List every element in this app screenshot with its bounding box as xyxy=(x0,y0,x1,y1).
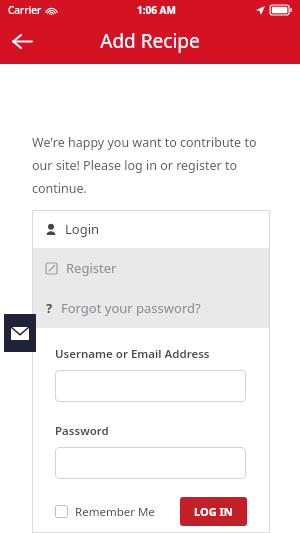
staticText: Register xyxy=(66,259,117,277)
button[interactable]: Remember Me xyxy=(55,505,68,518)
staticText: Forgot your password? xyxy=(61,299,201,317)
staticText: Login xyxy=(65,220,100,238)
staticText: Add Recipe xyxy=(100,28,200,54)
button[interactable]: ? xyxy=(32,288,270,328)
button[interactable]: Messages xyxy=(4,314,36,352)
staticText: LOG IN xyxy=(194,504,233,519)
button[interactable]: Text input xyxy=(55,447,246,479)
button[interactable]: Login xyxy=(32,210,270,248)
button[interactable]: Text input xyxy=(55,370,246,402)
button[interactable]: Register xyxy=(32,248,270,288)
staticText: 1:06 AM xyxy=(137,3,176,17)
staticText: Password xyxy=(55,423,109,439)
staticText: ? xyxy=(46,299,53,317)
staticText: We're happy you want to contribute to ou… xyxy=(32,134,272,197)
staticText: Username or Email Address xyxy=(55,346,210,362)
staticText: Remember Me xyxy=(75,504,155,520)
button[interactable]: Back xyxy=(0,19,44,63)
staticText: Carrier xyxy=(8,3,42,17)
button[interactable]: LOG IN xyxy=(180,497,247,526)
